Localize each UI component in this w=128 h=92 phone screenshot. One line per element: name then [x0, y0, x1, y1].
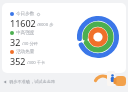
staticText: 今日步数 — [16, 11, 35, 17]
staticText: 活动热量 — [16, 49, 35, 55]
staticText: /300 千卡 — [27, 60, 46, 66]
staticText: 352 — [10, 55, 26, 67]
staticText: /30 分钟 — [22, 41, 38, 47]
staticText: 11602 — [10, 17, 36, 29]
button[interactable]: 今日步数 — [2, 3, 126, 73]
staticText: 测步不准确，试试走走路 — [9, 79, 56, 84]
button[interactable]: 测步不准确，试试走走路 — [3, 79, 56, 84]
staticText: 中高强度 — [16, 30, 35, 36]
staticText: 32 — [10, 36, 21, 48]
staticText: /8000 步 — [37, 22, 54, 28]
